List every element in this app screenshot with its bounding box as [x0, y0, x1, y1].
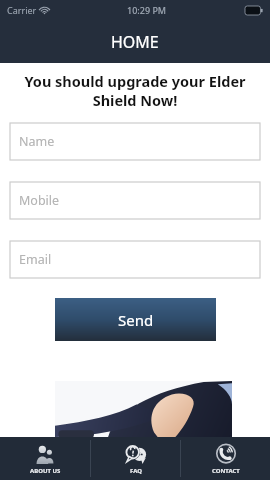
staticText: FAQ [130, 467, 142, 475]
staticText: Name [19, 133, 55, 150]
button[interactable]: Send [55, 298, 216, 341]
staticText: Mobile [19, 192, 60, 209]
button[interactable]: Mobile [10, 182, 260, 219]
button[interactable]: Email [10, 241, 260, 278]
button[interactable]: CONTACT [181, 437, 270, 480]
staticText: 10:29 PM [127, 4, 167, 16]
staticText: You should upgrade your Elder Shield Now… [12, 71, 258, 110]
button[interactable]: FAQ [91, 437, 180, 480]
staticText: Carrier [7, 4, 37, 16]
button[interactable]: ABOUT US [0, 437, 90, 480]
staticText: ABOUT US [30, 467, 61, 475]
staticText: CONTACT [212, 467, 240, 475]
staticText: Email [19, 251, 52, 268]
staticText: Send [118, 310, 154, 330]
staticText: HOME [111, 31, 159, 53]
button[interactable]: Name [10, 123, 260, 160]
